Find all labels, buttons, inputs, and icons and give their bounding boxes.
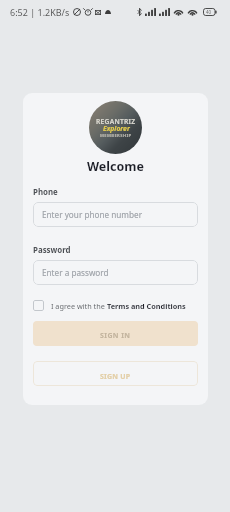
button[interactable]: Enter a password bbox=[33, 260, 198, 285]
button[interactable]: SIGN IN bbox=[33, 321, 198, 346]
staticText: Explorer bbox=[103, 124, 130, 133]
staticText: Password bbox=[33, 245, 71, 256]
button[interactable]: SIGN UP bbox=[33, 361, 198, 386]
staticText: Phone bbox=[33, 187, 58, 198]
staticText: SIGN IN bbox=[100, 331, 131, 341]
staticText: MEMBERSHIP bbox=[100, 133, 132, 139]
staticText: Terms and Conditions bbox=[107, 301, 186, 311]
staticText: Enter your phone number bbox=[42, 209, 143, 220]
staticText: REGANTRIZ bbox=[96, 117, 136, 126]
staticText: 40 bbox=[206, 9, 212, 15]
button[interactable]: Enter your phone number bbox=[33, 202, 198, 227]
staticText: Enter a password bbox=[42, 267, 109, 278]
button[interactable]: I agree with the bbox=[33, 300, 198, 311]
staticText: 6:52 | 1.2KB/s bbox=[10, 6, 70, 18]
staticText: I agree with the bbox=[51, 301, 107, 311]
staticText: SIGN UP bbox=[100, 372, 131, 382]
staticText: Welcome bbox=[87, 158, 144, 175]
